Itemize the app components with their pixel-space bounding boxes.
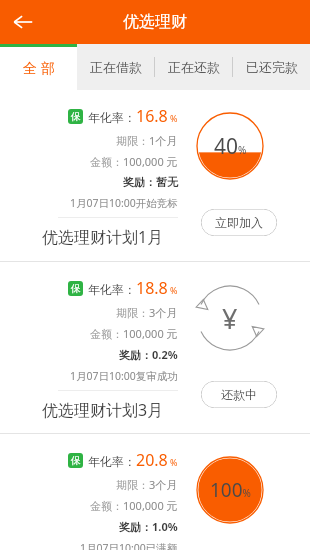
staticText: 优选理财计划3月 bbox=[42, 399, 178, 421]
staticText: 全 部 bbox=[23, 58, 55, 77]
staticText: 金额：100,000 元 bbox=[90, 154, 178, 169]
staticText: 年化率：20.8 % bbox=[88, 449, 178, 471]
staticText: 1月07日10:00已满额 bbox=[80, 541, 178, 550]
staticText: 年化率：16.8 % bbox=[88, 105, 178, 127]
button[interactable]: 全 部 bbox=[0, 44, 77, 90]
staticText: 100% bbox=[210, 477, 251, 503]
button[interactable]: 保 bbox=[0, 90, 310, 261]
button[interactable]: 立即加入 bbox=[201, 209, 277, 236]
button[interactable]: 保 bbox=[0, 262, 310, 433]
button[interactable]: 还款中 bbox=[201, 381, 277, 408]
button[interactable]: 已还完款 bbox=[233, 44, 310, 90]
staticText: 保 bbox=[71, 282, 81, 295]
staticText: 正在借款 bbox=[90, 59, 142, 75]
staticText: 40% bbox=[214, 132, 247, 161]
staticText: 奖励：0.2% bbox=[119, 347, 178, 362]
staticText: 1月07日10:00复审成功 bbox=[70, 369, 178, 383]
button[interactable]: 保 bbox=[0, 434, 310, 550]
button[interactable]: 正在还款 bbox=[155, 44, 232, 90]
staticText: 期限：3个月 bbox=[116, 305, 178, 320]
staticText: 还款中 bbox=[221, 387, 257, 402]
staticText: 优选理财计划1月 bbox=[42, 226, 178, 248]
staticText: 立即加入 bbox=[215, 215, 263, 230]
staticText: 期限：1个月 bbox=[116, 133, 178, 148]
button[interactable]: Back bbox=[0, 0, 46, 44]
staticText: 正在还款 bbox=[168, 59, 220, 75]
staticText: 金额：100,000 元 bbox=[90, 326, 178, 341]
staticText: 奖励：1.0% bbox=[119, 519, 178, 534]
staticText: 优选理财 bbox=[123, 12, 187, 32]
button[interactable]: 正在借款 bbox=[77, 44, 154, 90]
staticText: ¥ bbox=[222, 300, 238, 337]
staticText: 保 bbox=[71, 110, 81, 123]
staticText: 保 bbox=[71, 454, 81, 467]
staticText: 年化率：18.8 % bbox=[88, 277, 178, 299]
staticText: 期限：3个月 bbox=[116, 477, 178, 492]
staticText: 金额：100,000 元 bbox=[90, 498, 178, 513]
staticText: 已还完款 bbox=[246, 59, 298, 75]
staticText: 1月07日10:00开始竞标 bbox=[70, 196, 178, 210]
staticText: 奖励：暂无 bbox=[123, 175, 178, 189]
